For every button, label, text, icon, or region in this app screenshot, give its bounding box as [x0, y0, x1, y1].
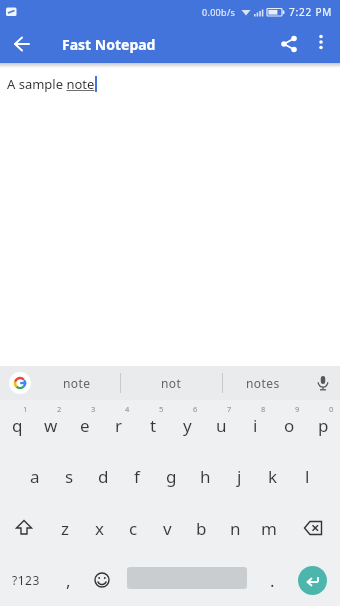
staticText: notes — [246, 375, 280, 391]
staticText: 4 — [125, 404, 130, 414]
button[interactable]: A sample note — [0, 63, 340, 366]
button[interactable]: not — [121, 366, 221, 400]
staticText: A sample note — [7, 75, 95, 93]
staticText: z — [61, 517, 69, 540]
staticText: g — [166, 465, 177, 488]
button[interactable]: a — [18, 451, 52, 502]
staticText: a — [30, 465, 40, 488]
staticText: 7 — [227, 404, 232, 414]
button[interactable]: w — [34, 400, 68, 451]
staticText: l — [305, 465, 310, 488]
button[interactable]: v — [150, 502, 184, 554]
button[interactable]: n — [218, 502, 252, 554]
staticText: ?123 — [12, 572, 40, 588]
staticText: 7:22 PM — [289, 5, 333, 19]
staticText: not — [161, 375, 182, 391]
button[interactable]: m — [252, 502, 286, 554]
button[interactable] — [306, 366, 340, 400]
staticText: h — [200, 465, 211, 488]
staticText: , — [66, 569, 71, 592]
staticText: 9 — [295, 404, 300, 414]
staticText: Fast Notepad — [62, 35, 156, 54]
button[interactable] — [9, 372, 31, 394]
staticText: w — [44, 414, 58, 437]
button[interactable] — [85, 554, 119, 606]
staticText: v — [163, 517, 172, 540]
staticText: 8 — [261, 404, 266, 414]
staticText: 2 — [57, 404, 62, 414]
button[interactable]: b — [184, 502, 218, 554]
button[interactable]: s — [52, 451, 86, 502]
button[interactable]: j — [222, 451, 256, 502]
staticText: p — [318, 414, 329, 437]
button[interactable]: e — [68, 400, 102, 451]
button[interactable]: note — [36, 366, 117, 400]
staticText: u — [216, 414, 227, 437]
button[interactable]: y — [170, 400, 204, 451]
staticText: note — [63, 375, 91, 391]
staticText: f — [134, 465, 140, 488]
staticText: . — [270, 569, 275, 592]
staticText: c — [129, 517, 138, 540]
staticText: 0 — [329, 404, 334, 414]
staticText: q — [12, 414, 23, 437]
staticText: 0.00b/s — [202, 6, 236, 18]
button[interactable]: f — [120, 451, 154, 502]
button[interactable]: i — [238, 400, 272, 451]
staticText: b — [196, 517, 207, 540]
button[interactable] — [0, 502, 48, 554]
button[interactable]: p — [306, 400, 340, 451]
button[interactable]: q — [0, 400, 34, 451]
button[interactable] — [272, 27, 306, 61]
staticText: s — [65, 465, 74, 488]
staticText: t — [150, 414, 157, 437]
button[interactable]: ?123 — [0, 554, 51, 606]
button[interactable]: u — [204, 400, 238, 451]
button[interactable] — [3, 25, 41, 63]
button[interactable]: r — [102, 400, 136, 451]
staticText: 5 — [159, 404, 164, 414]
staticText: 3 — [91, 404, 96, 414]
button[interactable]: k — [256, 451, 290, 502]
button[interactable] — [289, 554, 340, 606]
staticText: x — [95, 517, 104, 540]
staticText: m — [261, 517, 277, 540]
staticText: j — [237, 465, 242, 488]
staticText: e — [80, 414, 90, 437]
button[interactable]: . — [255, 554, 289, 606]
button[interactable] — [286, 502, 340, 554]
button[interactable]: , — [51, 554, 85, 606]
staticText: r — [115, 414, 123, 437]
staticText: 6 — [193, 404, 198, 414]
staticText: k — [268, 465, 278, 488]
staticText: d — [98, 465, 109, 488]
button[interactable]: d — [86, 451, 120, 502]
staticText: y — [183, 414, 192, 437]
button[interactable] — [306, 27, 336, 57]
button[interactable]: h — [188, 451, 222, 502]
button[interactable]: x — [82, 502, 116, 554]
staticText: o — [284, 414, 295, 437]
staticText: n — [230, 517, 241, 540]
button[interactable]: notes — [223, 366, 303, 400]
button[interactable]: z — [48, 502, 82, 554]
button[interactable]: g — [154, 451, 188, 502]
button[interactable] — [119, 554, 255, 606]
button[interactable]: o — [272, 400, 306, 451]
button[interactable]: t — [136, 400, 170, 451]
staticText: 1 — [23, 404, 28, 414]
button[interactable]: l — [290, 451, 324, 502]
staticText: i — [253, 414, 258, 437]
button[interactable]: c — [116, 502, 150, 554]
